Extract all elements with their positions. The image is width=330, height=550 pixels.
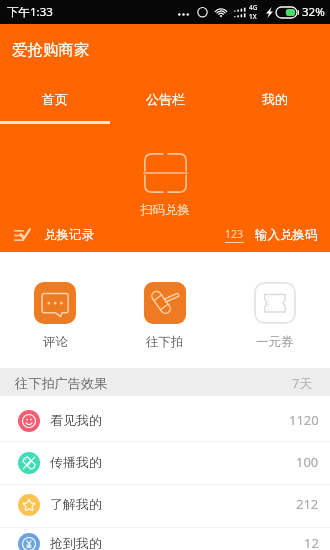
button[interactable]: 首页 <box>0 76 110 121</box>
other: 扫码兑换 <box>144 153 187 193</box>
button[interactable]: 传播我的 <box>0 442 330 484</box>
staticText: 7天 <box>292 374 313 391</box>
staticText: 下午1:33 <box>7 4 53 20</box>
button[interactable]: 评论 <box>0 282 110 350</box>
button[interactable]: 往下拍 <box>110 282 220 350</box>
staticText: 32% <box>302 4 325 20</box>
staticText: 往下拍广告效果 <box>15 375 108 392</box>
button[interactable]: 一元券 <box>220 282 330 350</box>
staticText: 抢到我的 <box>50 535 102 550</box>
staticText: 100 <box>296 453 319 471</box>
staticText: 了解我的 <box>50 496 102 512</box>
staticText: 评论 <box>43 334 68 350</box>
staticText: 4G <box>249 3 258 12</box>
staticText: 公告栏 <box>146 91 185 107</box>
staticText: 看见我的 <box>50 412 102 428</box>
button[interactable]: 我的 <box>220 76 330 121</box>
staticText: 212 <box>296 495 319 513</box>
button[interactable]: 看见我的 <box>0 396 330 441</box>
staticText: 首页 <box>42 91 68 107</box>
staticText: 爱抢购商家 <box>12 40 90 60</box>
button[interactable]: 抢到我的 <box>0 528 330 550</box>
button[interactable]: 公告栏 <box>110 76 220 121</box>
staticText: 12 <box>304 534 319 550</box>
staticText: 扫码兑换 <box>140 202 190 218</box>
staticText: 1X <box>249 12 257 21</box>
staticText: 输入兑换码 <box>255 227 318 243</box>
staticText: 1120 <box>289 411 319 429</box>
button[interactable]: 兑换记录 <box>0 224 102 246</box>
staticText: 123 <box>225 227 244 241</box>
button[interactable]: 123 <box>217 224 330 246</box>
button[interactable]: 扫码兑换 <box>0 153 330 218</box>
staticText: 兑换记录 <box>44 227 94 243</box>
staticText: 一元券 <box>256 334 294 350</box>
staticText: 往下拍 <box>146 334 184 350</box>
button[interactable]: 了解我的 <box>0 485 330 527</box>
staticText: 传播我的 <box>50 454 102 470</box>
staticText: 我的 <box>262 91 288 107</box>
